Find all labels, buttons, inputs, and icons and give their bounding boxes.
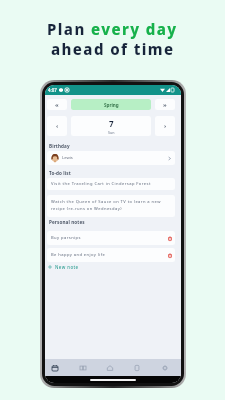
other: Delete <box>168 253 172 258</box>
staticText: « <box>55 101 59 109</box>
button[interactable]: Previous day <box>47 116 67 136</box>
button[interactable]: Notes <box>126 359 148 376</box>
button[interactable]: Lewis <box>47 151 175 165</box>
staticText: 4:07 <box>48 87 57 93</box>
staticText: Buy parsnips <box>51 235 81 241</box>
button[interactable]: Journal <box>72 359 94 376</box>
staticText: ‹ <box>56 122 59 130</box>
staticText: Sun <box>108 130 115 135</box>
staticText: Watch the Queen of Sauce on TV to learn … <box>51 199 161 211</box>
staticText: New note <box>55 264 79 270</box>
staticText: Spring <box>104 102 119 108</box>
button[interactable]: Visit the Traveling Cart in Cindersap Fo… <box>47 178 175 190</box>
staticText: Personal notes <box>49 219 85 225</box>
staticText: Visit the Traveling Cart in Cindersap Fo… <box>51 181 151 187</box>
button[interactable]: New note <box>47 263 81 271</box>
button[interactable]: Next season <box>155 99 175 110</box>
button[interactable]: Home <box>99 359 121 376</box>
other: Delete <box>168 236 172 241</box>
button[interactable]: Settings <box>154 359 176 376</box>
button[interactable]: Next day <box>155 116 175 136</box>
button[interactable]: Be happy and enjoy life <box>47 248 175 262</box>
button[interactable]: Spring <box>71 99 151 110</box>
staticText: 7 <box>109 118 114 129</box>
staticText: Plan <box>47 19 91 39</box>
staticText: › <box>164 122 167 130</box>
staticText: every day <box>91 19 178 39</box>
staticText: To-do list <box>49 170 71 176</box>
staticText: Lewis <box>62 155 73 161</box>
button[interactable]: Previous season <box>47 99 67 110</box>
staticText: » <box>163 101 167 109</box>
staticText: Birthday <box>49 143 70 149</box>
button[interactable]: 7 <box>71 116 151 136</box>
button[interactable]: Calendar <box>45 359 66 376</box>
staticText: Be happy and enjoy life <box>51 252 106 258</box>
staticText: ahead of time <box>51 39 175 59</box>
button[interactable]: Watch the Queen of Sauce on TV to learn … <box>47 195 175 217</box>
button[interactable]: Buy parsnips <box>47 231 175 245</box>
